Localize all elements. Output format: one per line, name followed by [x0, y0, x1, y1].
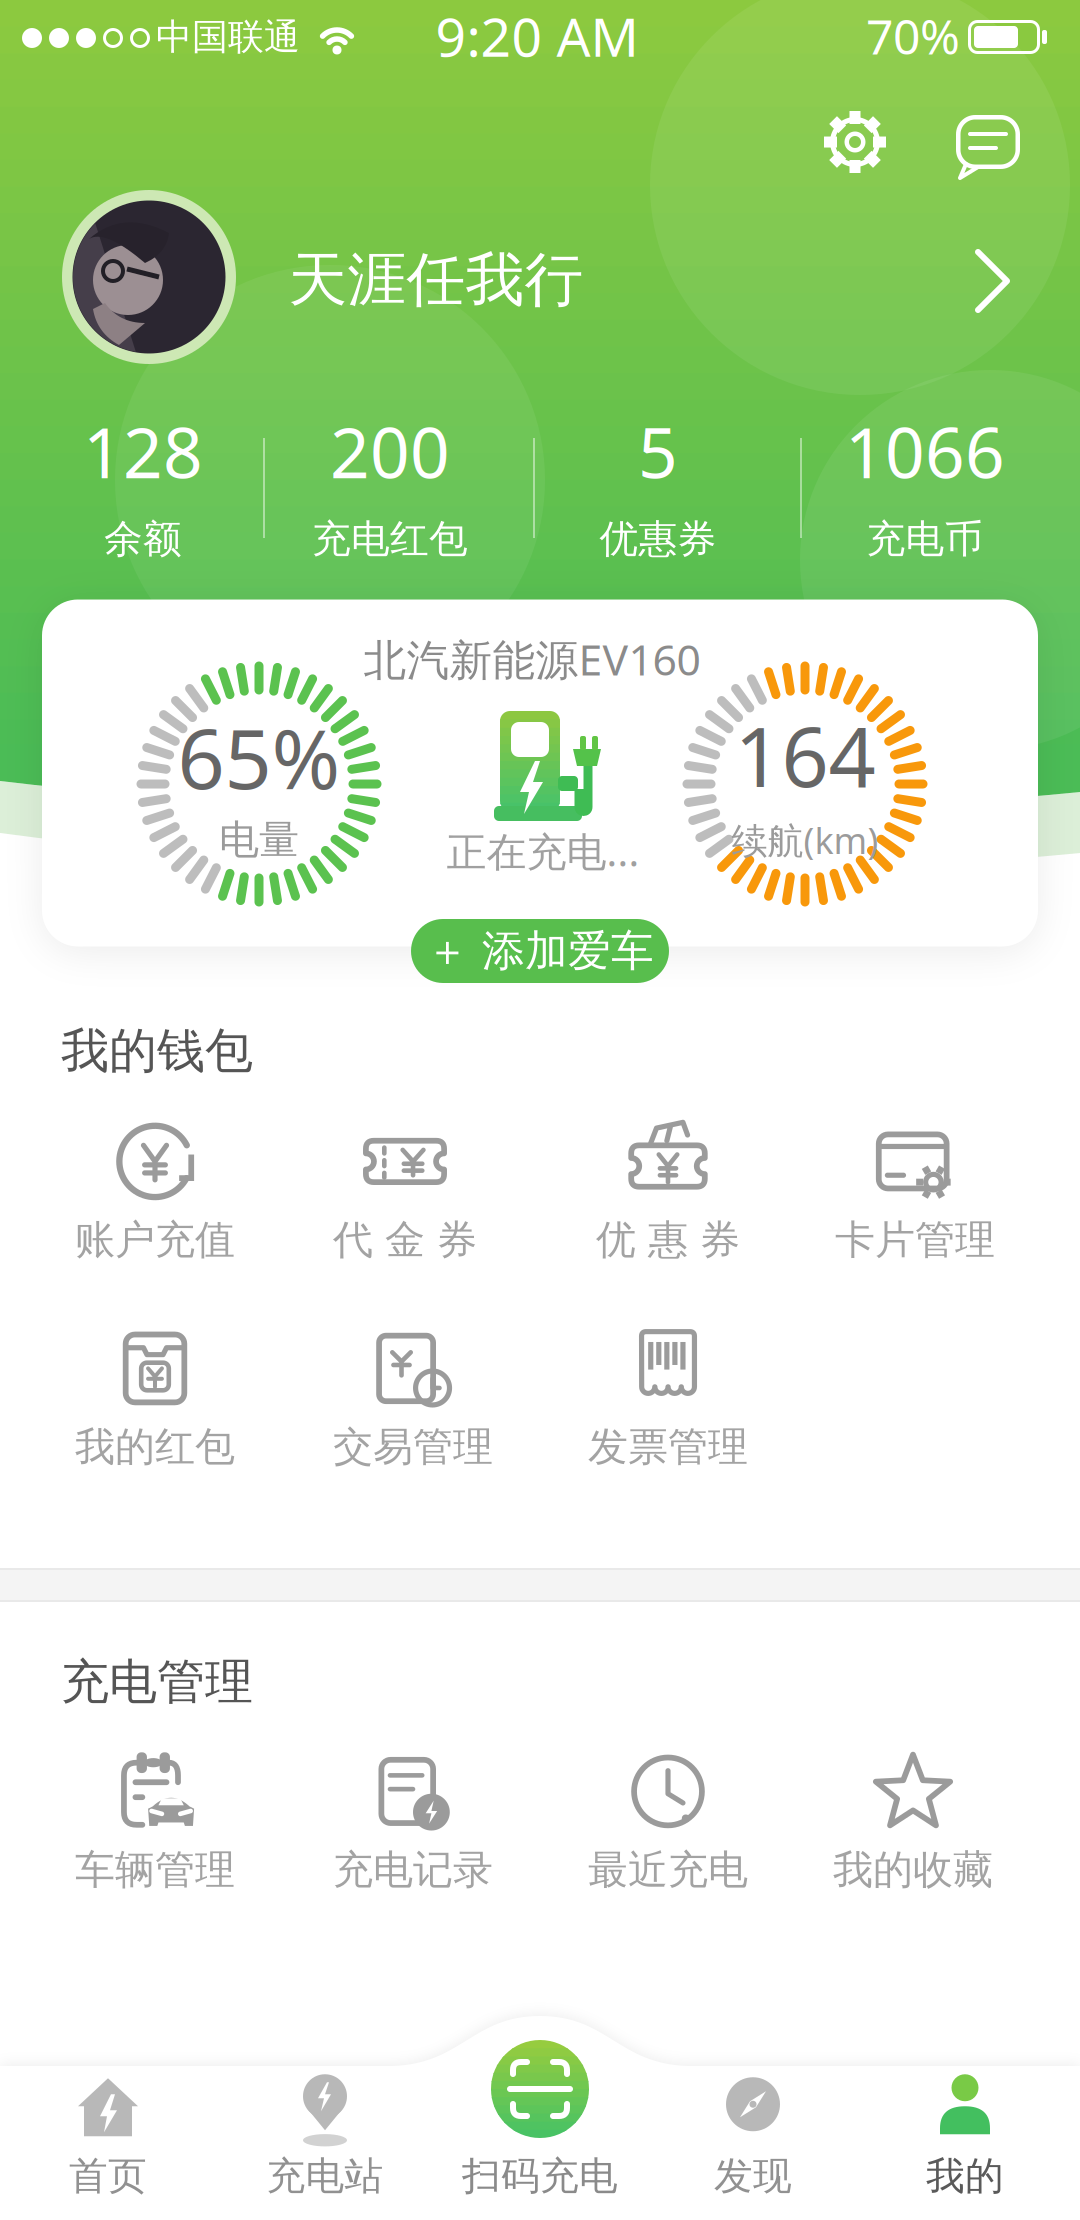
staticText: 128: [83, 405, 203, 497]
staticText: 北汽新能源EV160: [363, 631, 700, 687]
button[interactable]: 优 惠 券: [596, 1121, 740, 1264]
button[interactable]: 账户充值: [75, 1121, 235, 1264]
button[interactable]: 卡片管理: [835, 1121, 995, 1264]
staticText: 200: [330, 405, 450, 497]
staticText: 账户充值: [75, 1215, 235, 1264]
staticText: 5: [638, 405, 678, 497]
staticText: 车辆管理: [75, 1845, 235, 1894]
staticText: 我的红包: [75, 1422, 235, 1471]
button[interactable]: 我的红包: [75, 1328, 235, 1471]
staticText: 最近充电: [588, 1845, 748, 1894]
staticText: 首页: [69, 2152, 147, 2200]
button[interactable]: 我的: [926, 2070, 1004, 2200]
staticText: 充电币: [866, 515, 983, 563]
staticText: 续航(km): [731, 816, 878, 864]
staticText: 电量: [219, 815, 299, 864]
staticText: 我的: [926, 2152, 1004, 2200]
staticText: ＋ 添加爱车: [426, 925, 654, 977]
button[interactable]: 128: [83, 405, 203, 563]
staticText: 天涯任我行: [288, 244, 583, 316]
staticText: 扫码充电: [462, 2152, 618, 2200]
staticText: 我的收藏: [833, 1845, 993, 1894]
button[interactable]: 5: [599, 405, 716, 563]
staticText: 充电红包: [312, 515, 468, 563]
button[interactable]: Profile: [0, 0, 1080, 380]
button[interactable]: 充电记录: [333, 1751, 493, 1894]
button[interactable]: 扫码充电: [491, 2040, 589, 2138]
staticText: 卡片管理: [835, 1215, 995, 1264]
staticText: 交易管理: [333, 1422, 493, 1471]
button[interactable]: 发现: [714, 2070, 792, 2200]
staticText: 发现: [714, 2152, 792, 2200]
staticText: 我的钱包: [61, 1021, 253, 1080]
staticText: 优惠券: [599, 515, 716, 563]
staticText: 65%: [177, 702, 340, 812]
button[interactable]: 车辆管理: [75, 1751, 235, 1894]
staticText: 充电管理: [61, 1652, 253, 1711]
staticText: 正在充电...: [446, 824, 639, 877]
button[interactable]: 交易管理: [333, 1328, 493, 1471]
staticText: 充电站: [266, 2152, 383, 2200]
button[interactable]: Messages: [950, 104, 1026, 180]
button[interactable]: 1066: [845, 405, 1005, 563]
staticText: 余额: [104, 515, 182, 563]
button[interactable]: 200: [312, 405, 468, 563]
staticText: 代 金 券: [333, 1215, 477, 1264]
staticText: 充电记录: [333, 1845, 493, 1894]
staticText: 优 惠 券: [596, 1215, 740, 1264]
button[interactable]: 代 金 券: [333, 1121, 477, 1264]
staticText: 发票管理: [588, 1422, 748, 1471]
button[interactable]: 首页: [69, 2070, 147, 2200]
staticText: 70%: [866, 4, 960, 68]
button[interactable]: 发票管理: [588, 1328, 748, 1471]
button[interactable]: 我的收藏: [833, 1751, 993, 1894]
staticText: 164: [734, 700, 875, 810]
staticText: 中国联通: [156, 15, 300, 59]
button[interactable]: Settings: [817, 104, 893, 180]
button[interactable]: ＋ 添加爱车: [411, 919, 669, 983]
staticText: 1066: [845, 405, 1005, 497]
button[interactable]: 最近充电: [588, 1751, 748, 1894]
staticText: 9:20 AM: [435, 1, 638, 71]
button[interactable]: 充电站: [266, 2070, 383, 2200]
